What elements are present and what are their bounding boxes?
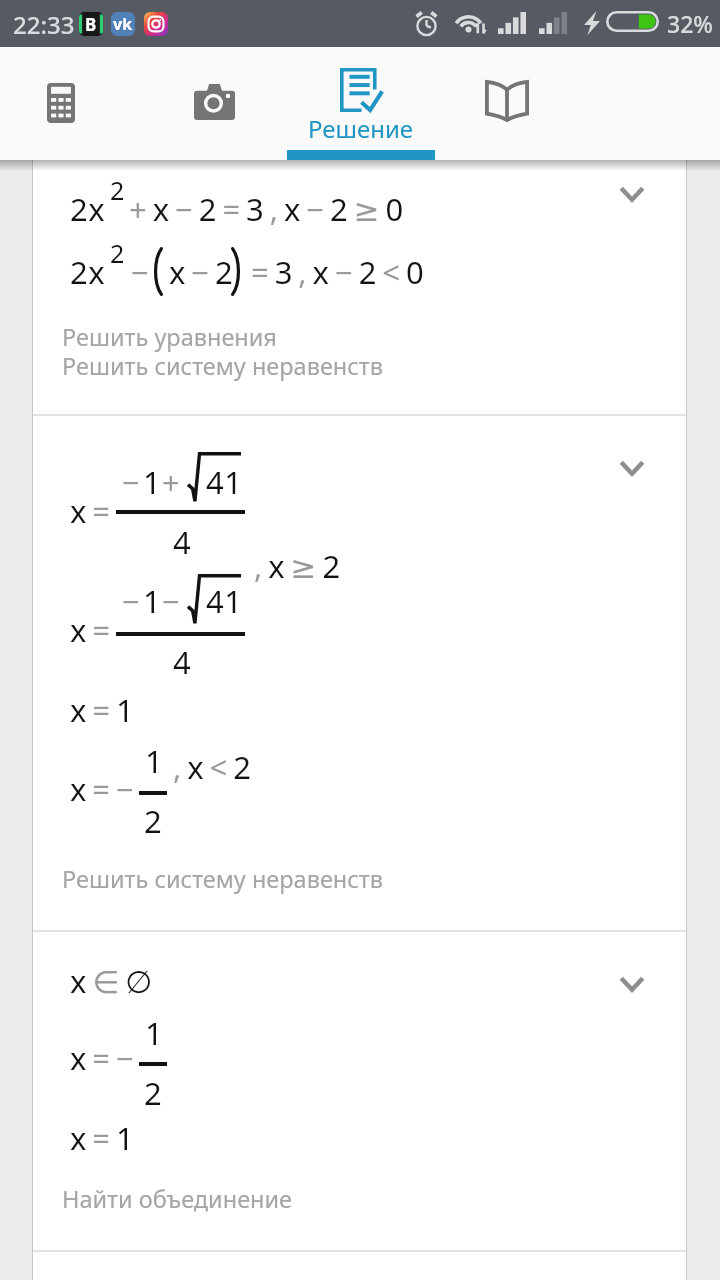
staticText: 2x [70, 188, 105, 230]
staticText: 2x [70, 251, 105, 293]
button[interactable]: Развернуть [609, 445, 655, 491]
staticText: + [162, 461, 181, 503]
button[interactable]: Развернуть [609, 171, 655, 217]
staticText: 2 [144, 1072, 163, 1114]
button[interactable]: Решение [287, 47, 435, 160]
button[interactable]: Справочник [433, 47, 581, 160]
staticText: 1 [143, 580, 162, 622]
staticText: + x − 2 = 3 , x − 2 ≥ 0 [129, 188, 404, 230]
staticText: − [131, 251, 150, 293]
staticText: B [85, 13, 97, 36]
staticText: 41 [206, 461, 243, 503]
staticText: 1 [145, 1012, 164, 1054]
staticText: Решить систему неравенств [62, 350, 384, 382]
staticText: 2 [110, 236, 125, 270]
staticText: , x ≥ 2 [254, 545, 341, 587]
staticText: − [122, 461, 141, 503]
button[interactable]: 2x [33, 160, 686, 414]
staticText: − [122, 580, 141, 622]
staticText: x − 2 [169, 251, 234, 293]
staticText: 41 [206, 580, 243, 622]
button[interactable]: Развернуть [609, 961, 655, 1007]
button[interactable]: x ∈ ∅ [33, 932, 686, 1250]
staticText: 1 [143, 461, 162, 503]
staticText: x ∈ ∅ [70, 960, 153, 1002]
staticText: 2 [144, 800, 163, 842]
staticText: 22:33 [13, 8, 75, 41]
button[interactable]: x = [33, 416, 686, 930]
staticText: 1 [145, 740, 164, 782]
staticText: Решение [308, 112, 414, 145]
staticText: x = − [70, 768, 135, 810]
staticText: Решить систему неравенств [62, 863, 384, 895]
staticText: − [162, 580, 181, 622]
staticText: Найти объединение [62, 1183, 293, 1215]
button[interactable]: Камера [140, 47, 288, 160]
staticText: x = 1 [70, 689, 135, 731]
staticText: 4 [173, 521, 192, 563]
staticText: x = − [70, 1037, 135, 1079]
button[interactable]: Калькулятор [0, 47, 135, 160]
staticText: 2 [110, 173, 125, 207]
staticText: vk [113, 13, 133, 35]
staticText: 4 [173, 641, 192, 683]
staticText: 32% [667, 8, 713, 39]
staticText: = 3 , x − 2 < 0 [251, 251, 425, 293]
staticText: x = [70, 609, 111, 651]
staticText: x = 1 [70, 1117, 135, 1159]
staticText: , x < 2 [173, 746, 252, 788]
staticText: Решить уравнения [62, 321, 277, 353]
staticText: x = [70, 490, 111, 532]
